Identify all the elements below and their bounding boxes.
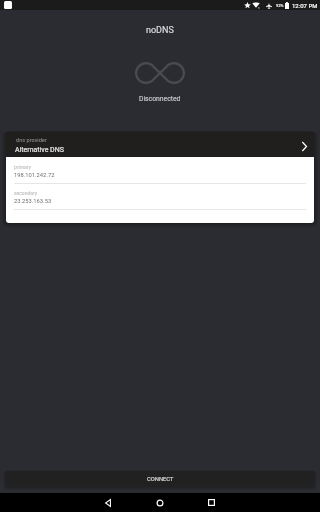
staticText: 92%	[276, 3, 284, 8]
staticText: 198.101.242.72	[14, 172, 55, 179]
staticText: 12:07 PM	[292, 2, 318, 9]
staticText: CONNECT	[147, 476, 174, 483]
other: Choose DNS provider	[301, 142, 307, 151]
button[interactable]: Recents	[191, 493, 231, 512]
staticText: secondary	[14, 190, 38, 196]
staticText: Disconnected	[139, 95, 181, 103]
button[interactable]: Home	[140, 493, 180, 512]
button[interactable]: primary	[6, 164, 314, 188]
staticText: dns provider	[16, 137, 47, 144]
button[interactable]: dns provider	[6, 132, 314, 157]
button[interactable]: Back	[88, 493, 128, 512]
staticText: Alternative DNS	[15, 146, 64, 154]
staticText: primary	[14, 164, 31, 170]
staticText: noDNS	[146, 25, 174, 36]
button[interactable]: secondary	[6, 190, 314, 214]
button[interactable]: CONNECT	[6, 471, 314, 487]
staticText: 23.253.163.53	[14, 198, 52, 205]
